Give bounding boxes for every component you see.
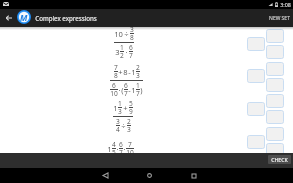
staticText: ÷ [121,121,126,131]
button[interactable]: Denominator answer [266,45,284,59]
staticText: 8 [130,33,134,42]
staticText: 3 [136,71,140,80]
staticText: 7 [128,140,132,149]
staticText: 6 [119,140,123,149]
staticText: 6 [112,81,116,90]
staticText: NEW SET [269,15,290,22]
button[interactable]: CHECK [268,155,291,164]
staticText: ) [140,85,143,95]
staticText: 7 [129,51,133,60]
staticText: 6 [129,43,133,52]
staticText: 2 [136,63,140,72]
staticText: 7 [124,89,128,98]
staticText: Complex expressions [35,14,97,22]
staticText: 1 [107,144,112,154]
button[interactable]: Whole number answer [247,37,265,51]
staticText: + [123,103,128,113]
staticText: 1 [113,103,118,113]
button[interactable]: Denominator answer [266,110,284,124]
staticText: 3 [127,125,131,134]
staticText: 3 [130,25,134,34]
staticText: 1 [136,81,140,90]
staticText: - [128,85,131,95]
button[interactable]: Back [2,10,15,25]
staticText: 1 [120,43,124,52]
staticText: - [128,67,131,77]
button[interactable]: Back [98,168,112,183]
staticText: 2 [120,51,124,60]
staticText: · [118,85,121,95]
staticText: 10 [110,89,118,98]
staticText: CHECK [271,156,288,163]
button[interactable]: Whole number answer [247,135,265,149]
button[interactable]: Whole number answer [247,102,265,116]
staticText: ( [121,85,124,95]
staticText: 1 [118,99,122,108]
staticText: 9 [129,107,133,116]
button[interactable]: Home [142,168,156,183]
staticText: 2 [127,117,131,126]
staticText: 5 [112,148,116,157]
staticText: 1 [131,67,136,77]
staticText: 10 [126,148,134,157]
staticText: 3:08 [280,1,291,8]
staticText: + [118,67,123,77]
staticText: · [123,144,126,154]
button[interactable]: Numerator answer [266,94,284,108]
staticText: 4 [112,140,116,149]
button[interactable]: Recents [187,168,201,183]
staticText: · [125,47,128,57]
button[interactable]: NEW SET [263,11,293,26]
staticText: 4 [116,125,120,134]
staticText: 8 [114,71,118,80]
staticText: 1 [131,85,136,95]
staticText: 5 [129,99,133,108]
staticText: 8 [123,67,128,77]
staticText: 3 [118,107,122,116]
staticText: 6 [124,81,128,90]
staticText: · [116,144,119,154]
staticText: M [20,12,28,23]
staticText: 7 [136,89,140,98]
staticText: 10 [114,29,123,39]
button[interactable]: Numerator answer [266,127,284,141]
staticText: 3 [116,117,120,126]
button[interactable]: Denominator answer [266,143,284,157]
button[interactable]: Numerator answer [266,62,284,76]
button[interactable]: Whole number answer [247,69,265,83]
staticText: ÷ [124,29,129,39]
staticText: 3 [115,47,120,57]
staticText: 7 [114,63,118,72]
staticText: 7 [119,148,123,157]
button[interactable]: Numerator answer [266,29,284,43]
button[interactable]: Denominator answer [266,78,284,92]
